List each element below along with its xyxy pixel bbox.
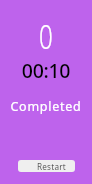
staticText: 0 (12, 14, 80, 59)
staticText: Restart (37, 161, 66, 172)
staticText: 00:10 (0, 57, 92, 84)
staticText: Completed (0, 97, 92, 114)
button[interactable]: Restart (18, 160, 75, 172)
